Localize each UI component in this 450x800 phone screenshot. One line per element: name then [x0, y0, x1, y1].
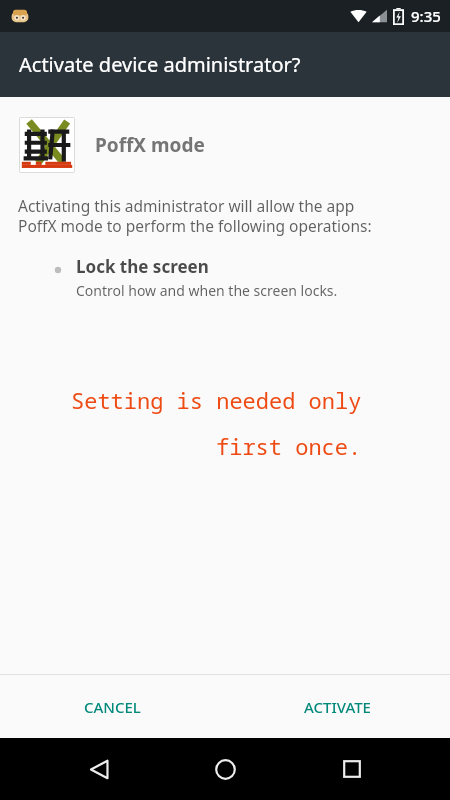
button[interactable]: CANCEL: [0, 675, 225, 738]
staticText: ACTIVATE: [304, 697, 371, 717]
staticText: PoffX mode: [95, 132, 205, 158]
button[interactable]: Recent apps: [324, 741, 380, 797]
staticText: Activate device administrator?: [19, 51, 301, 78]
staticText: Control how and when the screen locks.: [76, 281, 338, 300]
button[interactable]: Back: [71, 741, 127, 797]
staticText: 9:35: [411, 6, 441, 26]
staticText: first once.: [216, 431, 362, 461]
button[interactable]: Home: [197, 741, 253, 797]
staticText: Activating this administrator will allow…: [18, 195, 372, 237]
staticText: CANCEL: [84, 697, 141, 717]
staticText: Setting is needed only: [71, 385, 362, 415]
staticText: Lock the screen: [76, 255, 209, 278]
button[interactable]: ACTIVATE: [225, 675, 450, 738]
